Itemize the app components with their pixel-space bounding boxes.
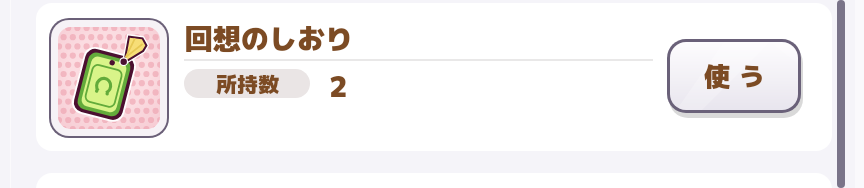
button[interactable]: 回想のしおり (36, 3, 832, 151)
staticText: 回想のしおり (185, 19, 354, 58)
staticText: 2 (329, 67, 348, 106)
button[interactable]: 使 う (670, 42, 798, 110)
staticText: 使 う (704, 58, 765, 94)
staticText: 所持数 (216, 69, 279, 98)
